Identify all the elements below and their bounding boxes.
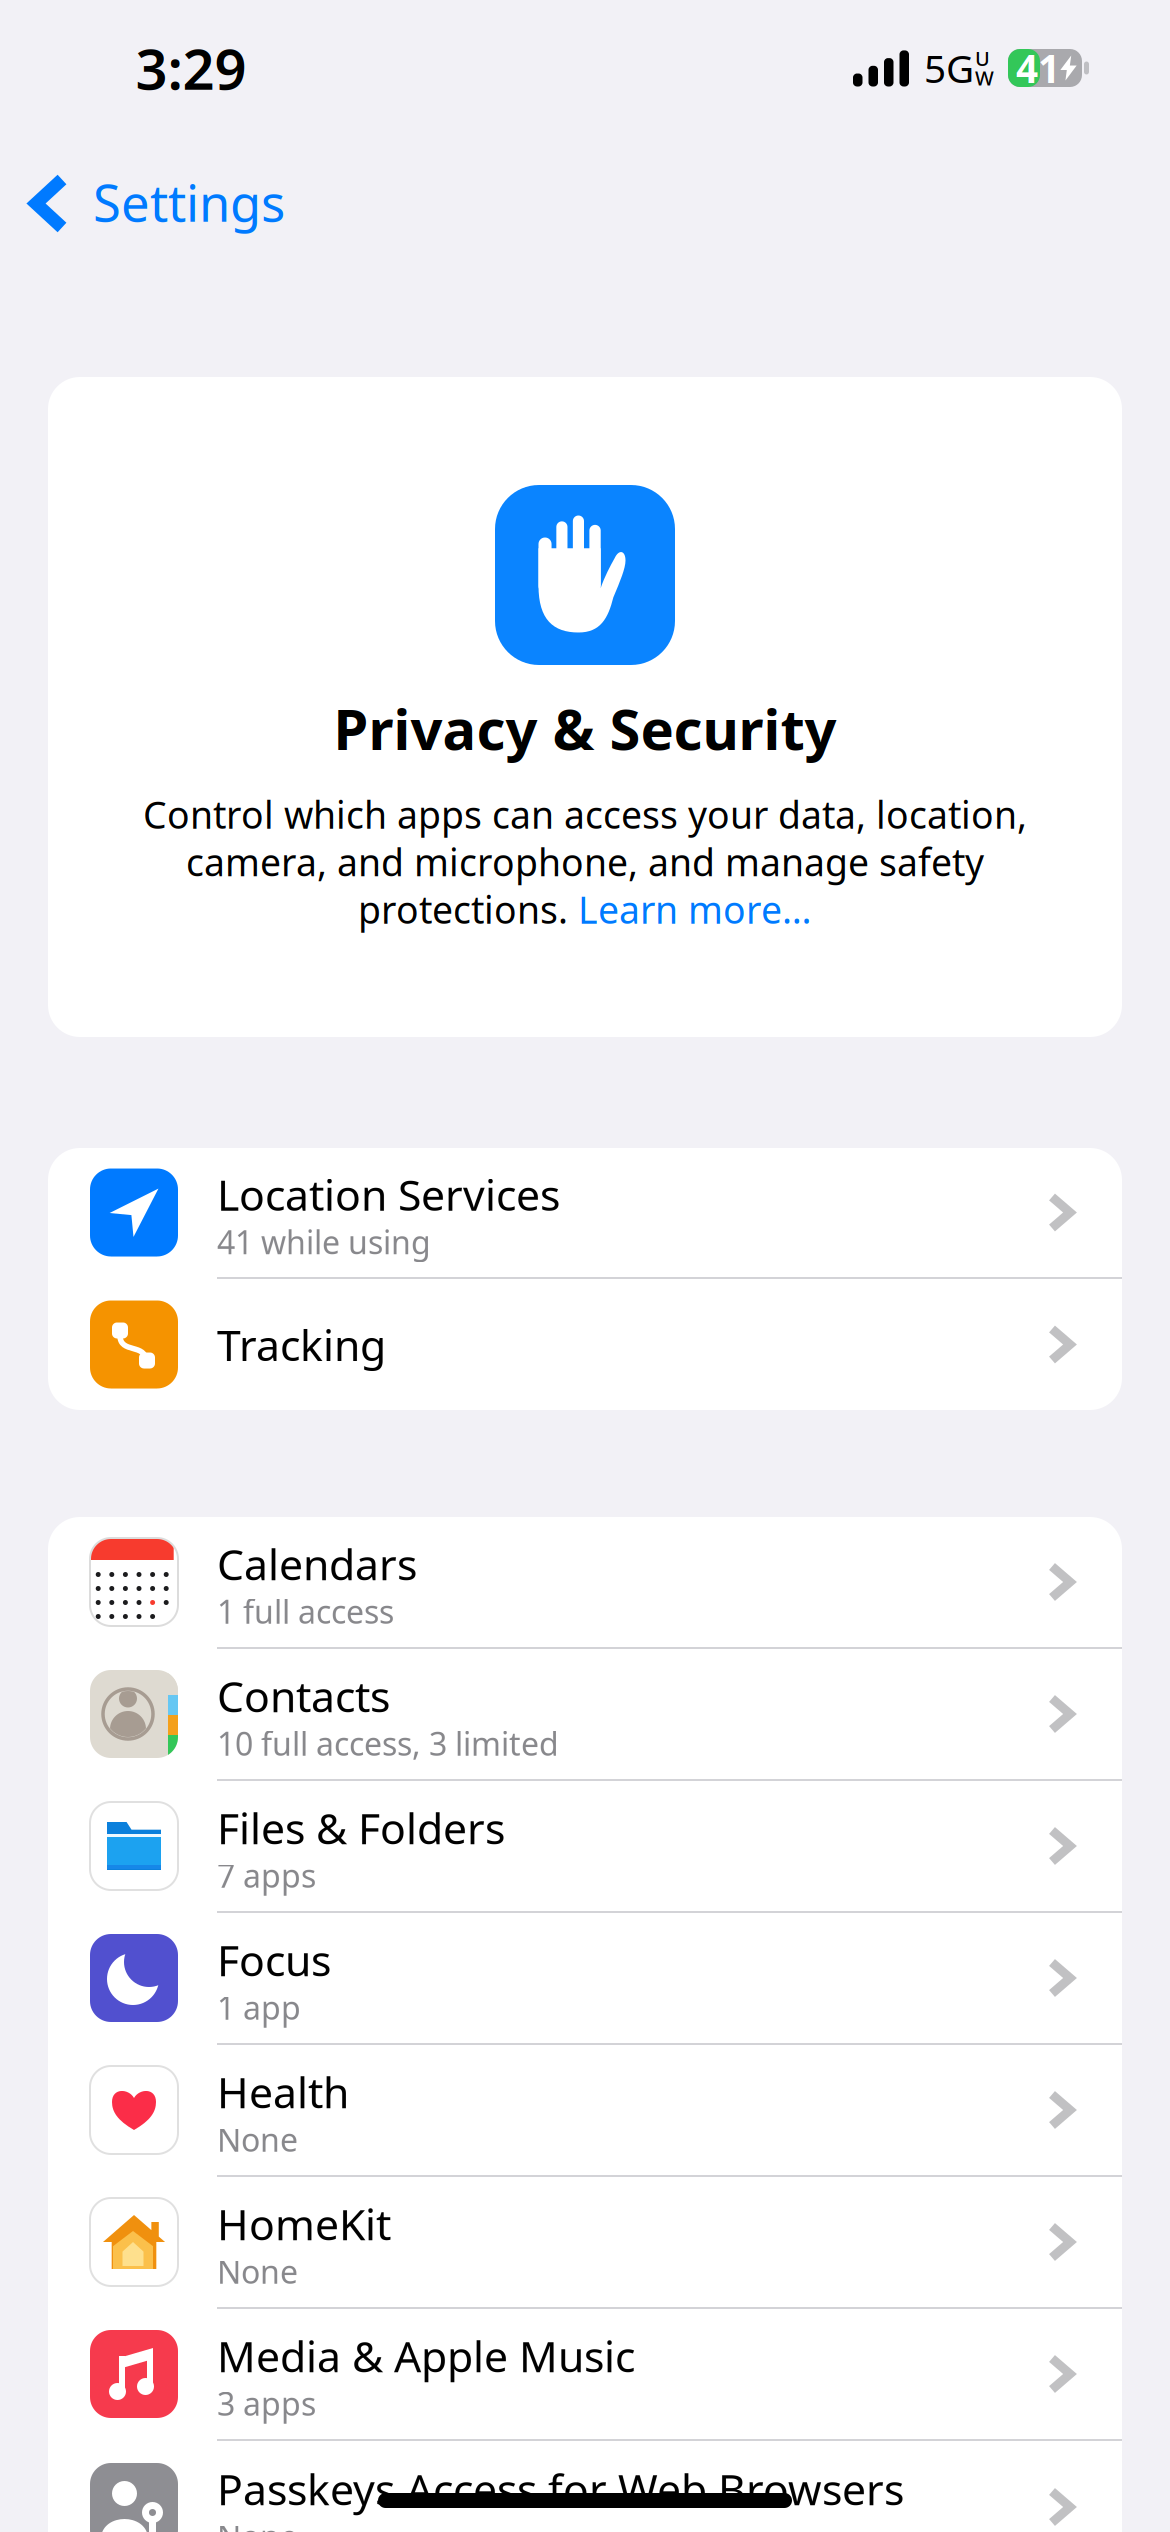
- staticText: None: [217, 2515, 298, 2532]
- button[interactable]: Media & Apple Music: [48, 2309, 1122, 2441]
- button[interactable]: Contacts: [48, 1649, 1122, 1781]
- staticText: Files & Folders: [217, 1799, 505, 1856]
- button[interactable]: Learn more…: [578, 884, 812, 934]
- staticText: Focus: [217, 1931, 331, 1988]
- button[interactable]: HomeKit: [48, 2177, 1122, 2309]
- staticText: HomeKit: [217, 2195, 391, 2252]
- button[interactable]: Passkeys Access for Web Browsers: [48, 2441, 1122, 2532]
- staticText: W: [975, 64, 994, 91]
- button[interactable]: Health: [48, 2045, 1122, 2177]
- staticText: None: [217, 2250, 298, 2293]
- staticText: Tracking: [217, 1316, 386, 1373]
- button[interactable]: Back to Settings: [0, 140, 285, 267]
- staticText: Learn more…: [578, 884, 812, 934]
- staticText: 41: [1016, 42, 1060, 94]
- staticText: 3 apps: [217, 2382, 316, 2425]
- staticText: None: [217, 2118, 298, 2161]
- staticText: Control which apps can access your data,…: [143, 789, 1027, 839]
- staticText: Calendars: [217, 1535, 417, 1592]
- staticText: 1 app: [217, 1986, 301, 2029]
- staticText: Contacts: [217, 1667, 390, 1724]
- button[interactable]: Files & Folders: [48, 1781, 1122, 1913]
- button[interactable]: Location Services: [48, 1148, 1122, 1279]
- button[interactable]: Focus: [48, 1913, 1122, 2045]
- staticText: 10 full access, 3 limited: [217, 1722, 559, 1765]
- staticText: Location Services: [217, 1166, 560, 1223]
- staticText: 41 while using: [217, 1221, 431, 1263]
- button[interactable]: Calendars: [48, 1517, 1122, 1649]
- staticText: Health: [217, 2063, 349, 2120]
- staticText: Passkeys Access for Web Browsers: [217, 2460, 904, 2517]
- staticText: Privacy & Security: [333, 691, 836, 765]
- staticText: Media & Apple Music: [217, 2327, 635, 2384]
- staticText: Settings: [93, 168, 285, 236]
- staticText: camera, and microphone, and manage safet…: [186, 837, 984, 886]
- staticText: protections.: [358, 884, 578, 934]
- button[interactable]: Tracking: [48, 1279, 1122, 1410]
- staticText: 5G: [924, 42, 974, 94]
- staticText: U: [975, 45, 990, 71]
- staticText: 3:29: [135, 31, 246, 105]
- staticText: 7 apps: [217, 1854, 316, 1897]
- staticText: 1 full access: [217, 1590, 394, 1633]
